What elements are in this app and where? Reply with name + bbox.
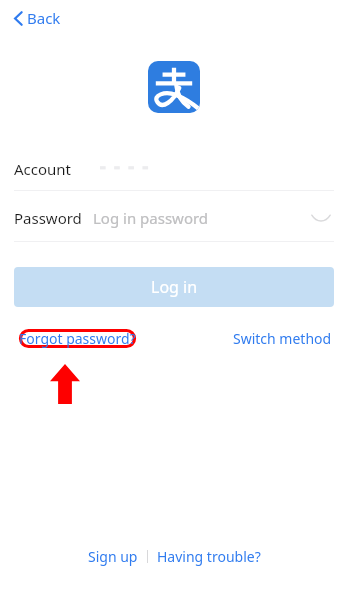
button[interactable]: Account [0,154,348,184]
staticText: Account [14,159,72,179]
staticText: Log in [151,276,198,298]
button[interactable]: Forgot password? [14,323,141,354]
staticText: Switch method [233,329,332,348]
button[interactable]: Password [0,203,348,233]
staticText: Sign up [88,547,138,566]
staticText: Password [14,208,82,228]
button[interactable]: Having trouble? [154,543,264,570]
button[interactable]: Sign up [85,543,141,570]
button[interactable]: Log in [14,267,334,307]
staticText: Back [27,8,61,28]
button[interactable]: Back [10,4,65,32]
staticText: Log in password [93,208,209,228]
button[interactable]: Show password [308,208,334,228]
button[interactable]: Switch method [231,323,334,354]
staticText: Forgot password? [19,329,136,348]
staticText: Having trouble? [157,547,261,566]
